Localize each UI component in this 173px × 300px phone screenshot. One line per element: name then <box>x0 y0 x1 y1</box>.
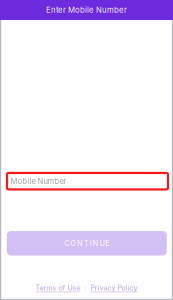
staticText: Terms of Use <box>35 284 80 292</box>
staticText: · <box>84 284 86 292</box>
button[interactable]: Mobile Number <box>7 173 168 189</box>
button[interactable]: Terms of Use <box>35 284 80 292</box>
button[interactable]: CONTINUE <box>7 231 167 256</box>
staticText: Enter Mobile Number <box>46 5 127 15</box>
staticText: Privacy Policy <box>90 284 137 292</box>
button[interactable]: Privacy Policy <box>90 284 137 292</box>
staticText: Mobile Number <box>10 177 66 186</box>
staticText: CONTINUE <box>64 239 109 248</box>
